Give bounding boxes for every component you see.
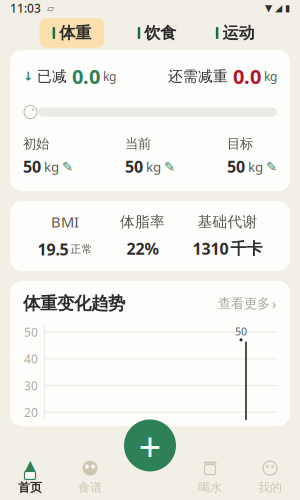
staticText: 体重变化趋势 bbox=[23, 293, 125, 314]
staticText: › bbox=[272, 294, 277, 313]
staticText: ✎ bbox=[266, 159, 277, 174]
staticText: 22% bbox=[126, 238, 158, 259]
staticText: 饮食 bbox=[144, 23, 176, 43]
button[interactable]: 编辑当前 bbox=[164, 159, 175, 174]
staticText: 食谱 bbox=[78, 480, 102, 495]
staticText: ✎ bbox=[164, 159, 175, 174]
staticText: ▼ bbox=[265, 3, 272, 13]
button[interactable]: 我的 bbox=[240, 454, 300, 500]
staticText: 50 bbox=[23, 156, 41, 177]
staticText: 正常 bbox=[70, 243, 92, 256]
staticText: 查看更多 bbox=[218, 295, 270, 312]
staticText: 体脂率 bbox=[120, 213, 165, 231]
staticText: 0.0 bbox=[228, 63, 261, 90]
staticText: 初始 bbox=[23, 136, 49, 152]
staticText: 50 bbox=[227, 156, 245, 177]
staticText: 还需减重 bbox=[168, 67, 228, 85]
staticText: 50 bbox=[24, 324, 38, 340]
staticText: 0.0 bbox=[67, 63, 100, 90]
button[interactable]: 喝水 bbox=[180, 454, 240, 500]
staticText: kg bbox=[248, 158, 263, 175]
button[interactable]: 编辑初始 bbox=[62, 159, 73, 174]
staticText: 50 bbox=[125, 156, 143, 177]
staticText: 11:03 bbox=[10, 0, 41, 16]
staticText: 30 bbox=[24, 378, 38, 393]
staticText: kg bbox=[44, 158, 59, 175]
staticText: 1310 bbox=[192, 238, 228, 259]
staticText: 50 bbox=[235, 324, 247, 338]
staticText: kg bbox=[261, 68, 277, 84]
button[interactable]: 饮食 bbox=[132, 18, 182, 48]
staticText: 我的 bbox=[258, 480, 282, 495]
staticText: 40 bbox=[24, 351, 38, 367]
staticText: 已减 bbox=[33, 67, 67, 85]
staticText: 千卡 bbox=[230, 239, 262, 258]
button[interactable]: ▲ bbox=[0, 454, 60, 500]
button[interactable]: 查看更多 bbox=[218, 294, 277, 313]
staticText: ↓ bbox=[23, 69, 33, 83]
staticText: 首页 bbox=[18, 480, 42, 495]
staticText: 目标 bbox=[227, 136, 253, 152]
staticText: kg bbox=[146, 158, 161, 175]
staticText: 运动 bbox=[222, 23, 254, 43]
staticText: ▮ bbox=[282, 3, 290, 13]
staticText: 体重 bbox=[59, 23, 91, 43]
staticText: 20 bbox=[24, 404, 38, 420]
button[interactable]: 运动 bbox=[210, 18, 260, 48]
staticText: 基础代谢 bbox=[197, 213, 257, 231]
staticText: ✎ bbox=[62, 159, 73, 174]
button[interactable]: 编辑目标 bbox=[266, 159, 277, 174]
button[interactable]: 食谱 bbox=[60, 454, 120, 500]
staticText: 喝水 bbox=[198, 480, 222, 495]
staticText: ▱ bbox=[41, 3, 54, 13]
button[interactable]: 体重 bbox=[40, 18, 104, 48]
staticText: BMI bbox=[51, 212, 79, 232]
staticText: 19.5 bbox=[37, 239, 68, 260]
staticText: ◢ bbox=[272, 3, 282, 13]
staticText: ▲ bbox=[24, 457, 35, 473]
staticText: 当前 bbox=[125, 136, 151, 152]
staticText: kg bbox=[100, 68, 116, 84]
staticText: + bbox=[138, 419, 161, 472]
button[interactable]: 添加记录 bbox=[124, 419, 176, 472]
